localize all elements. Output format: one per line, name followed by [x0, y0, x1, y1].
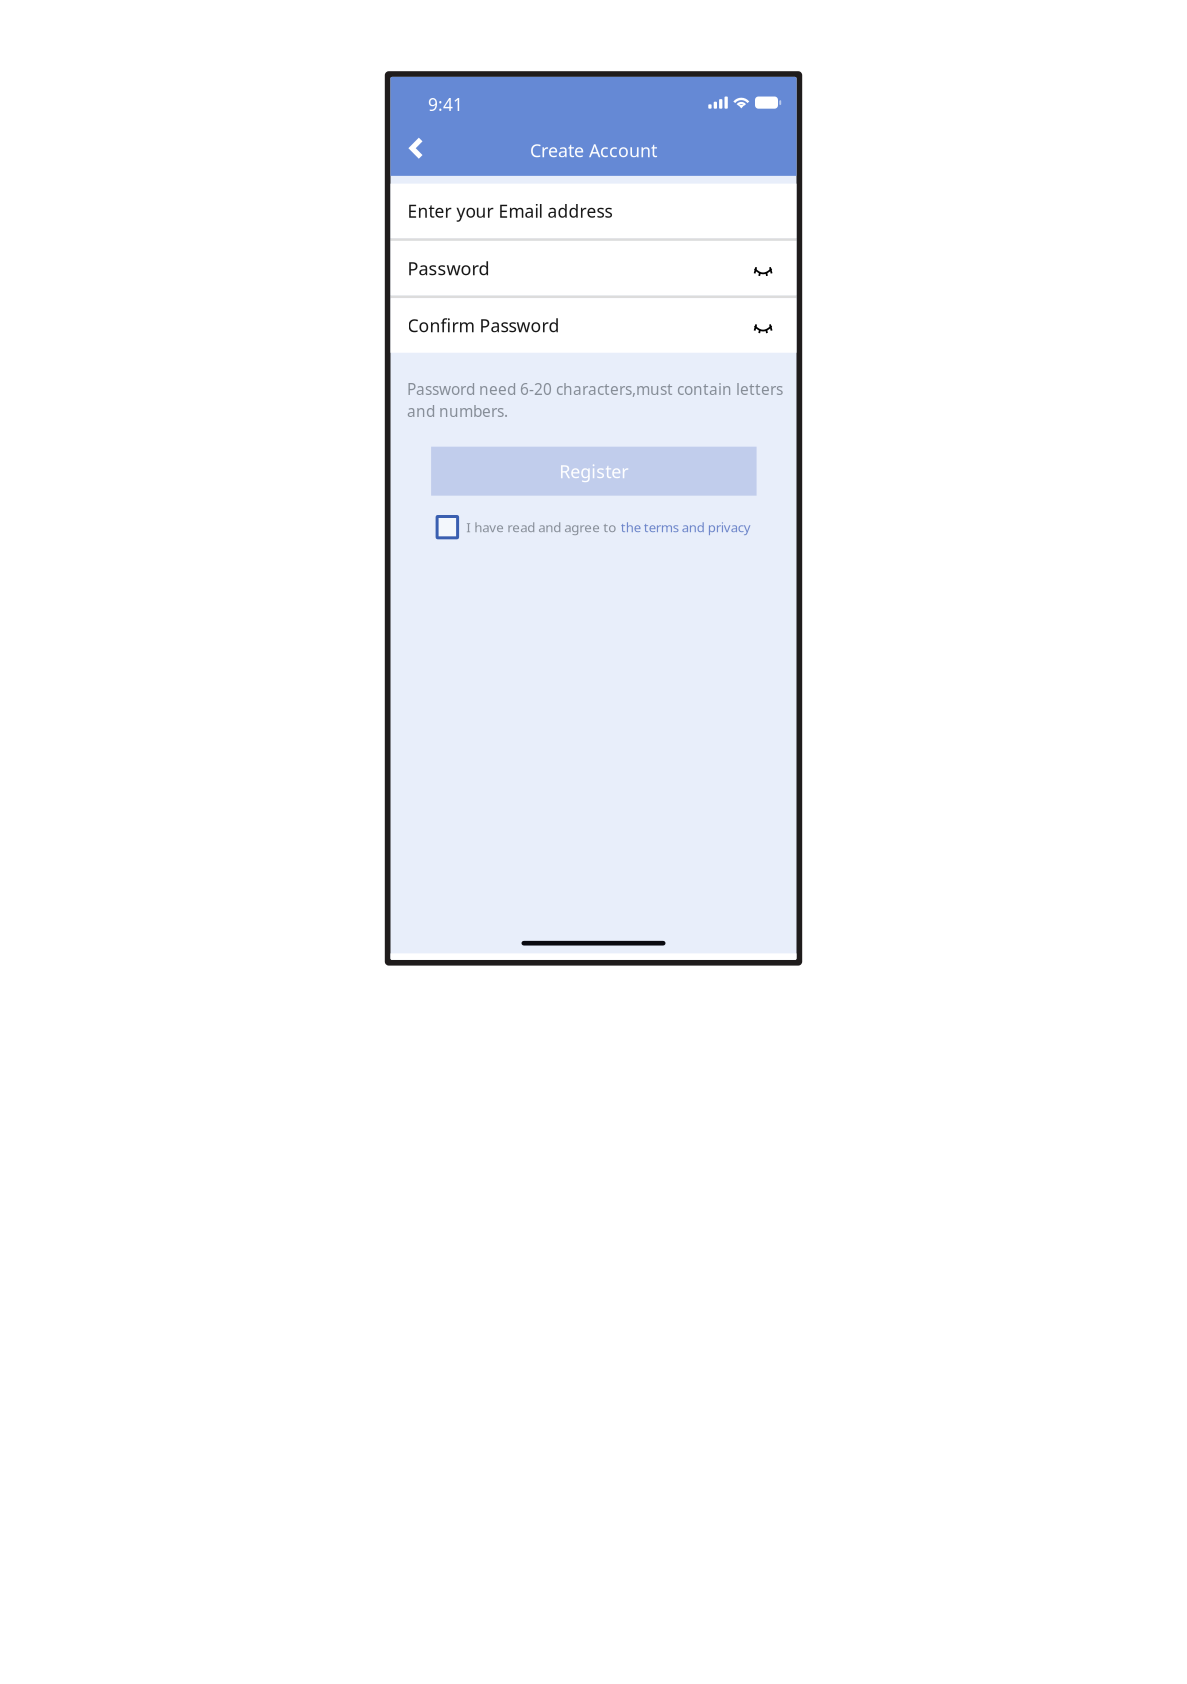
staticText: Password — [407, 256, 489, 280]
button[interactable]: Confirm Password — [390, 298, 796, 353]
staticText: Password need 6-20 characters,must conta… — [407, 378, 783, 421]
staticText: Create Account — [530, 138, 657, 162]
staticText: Enter your Email address — [407, 199, 612, 223]
staticText: 9:41 — [428, 92, 463, 116]
button[interactable]: Register — [431, 447, 757, 496]
staticText: the terms and privacy — [621, 518, 751, 536]
button[interactable]: Enter your Email address — [390, 184, 796, 238]
staticText: I have read and agree to — [466, 518, 616, 536]
button[interactable]: I have read and agree to — [466, 518, 751, 536]
button[interactable]: Agree to the terms and privacy — [437, 516, 458, 538]
staticText: Register — [559, 459, 628, 483]
button[interactable]: Back — [393, 125, 439, 171]
button[interactable]: Password — [390, 241, 796, 295]
staticText: Confirm Password — [407, 313, 559, 337]
